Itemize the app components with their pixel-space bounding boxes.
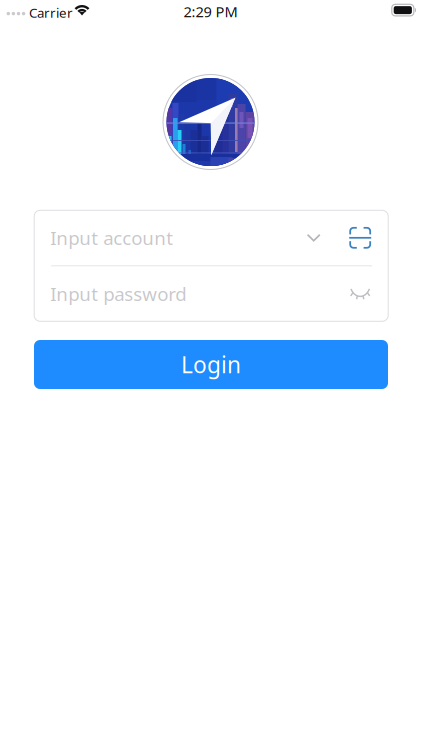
staticText: Login bbox=[181, 349, 241, 379]
button[interactable]: Input account bbox=[34, 210, 296, 265]
button[interactable]: Scan QR code bbox=[342, 220, 378, 256]
button[interactable]: Login bbox=[34, 340, 388, 389]
staticText: 2:29 PM bbox=[183, 2, 237, 21]
button[interactable]: Show password bbox=[342, 279, 378, 308]
staticText: Carrier bbox=[29, 4, 73, 21]
staticText: Input account bbox=[50, 225, 173, 250]
button[interactable]: Input password bbox=[34, 266, 342, 321]
staticText: Input password bbox=[50, 281, 186, 306]
button[interactable]: Choose account bbox=[298, 225, 330, 251]
